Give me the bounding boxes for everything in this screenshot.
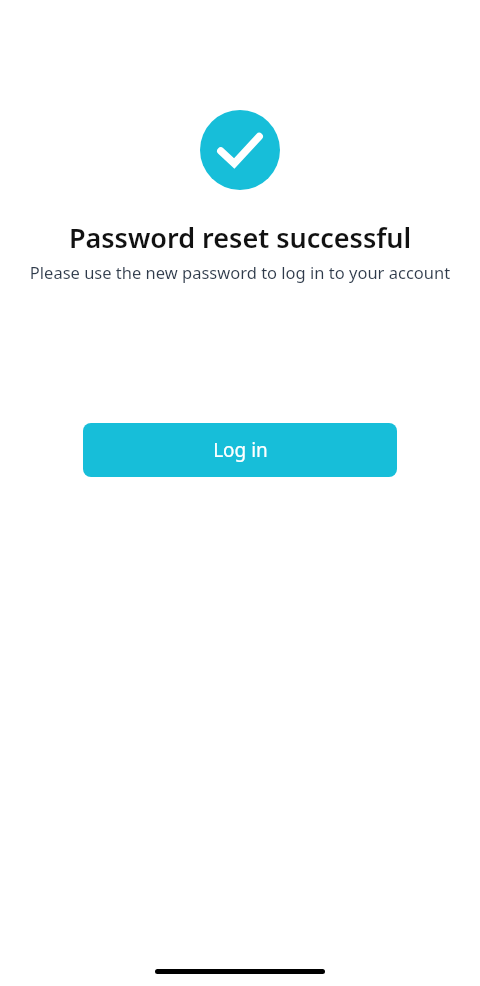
staticText: Password reset successful [0,219,480,256]
other: Success [200,110,280,190]
button[interactable]: Log in [83,423,397,477]
staticText: Log in [213,437,268,463]
staticText: Please use the new password to log in to… [0,261,480,283]
